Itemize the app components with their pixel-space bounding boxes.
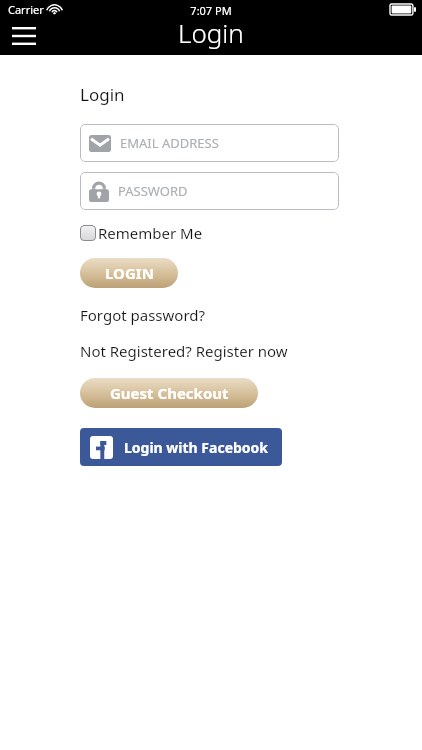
button[interactable]: LOGIN (80, 258, 178, 288)
button[interactable]: Remember Me (80, 223, 203, 243)
button[interactable]: Forgot password? (80, 305, 206, 325)
staticText: EMAIL ADDRESS (120, 134, 219, 152)
staticText: Forgot password? (80, 305, 206, 325)
staticText: Login (80, 83, 125, 106)
staticText: Carrier (8, 2, 44, 17)
button[interactable]: Menu (6, 18, 42, 54)
button[interactable]: Login with Facebook (80, 428, 282, 466)
staticText: 7:07 PM (190, 3, 232, 18)
staticText: LOGIN (105, 263, 154, 283)
button[interactable]: Not Registered? Register now (80, 341, 288, 361)
staticText: Login (178, 15, 244, 50)
button[interactable]: Guest Checkout (80, 378, 258, 408)
staticText: Login with Facebook (124, 438, 269, 457)
staticText: Guest Checkout (110, 383, 229, 403)
staticText: Remember Me (98, 223, 203, 243)
staticText: PASSWORD (118, 182, 188, 200)
staticText: Not Registered? Register now (80, 341, 288, 361)
button[interactable]: PASSWORD (80, 172, 339, 210)
button[interactable]: EMAIL ADDRESS (80, 124, 339, 162)
